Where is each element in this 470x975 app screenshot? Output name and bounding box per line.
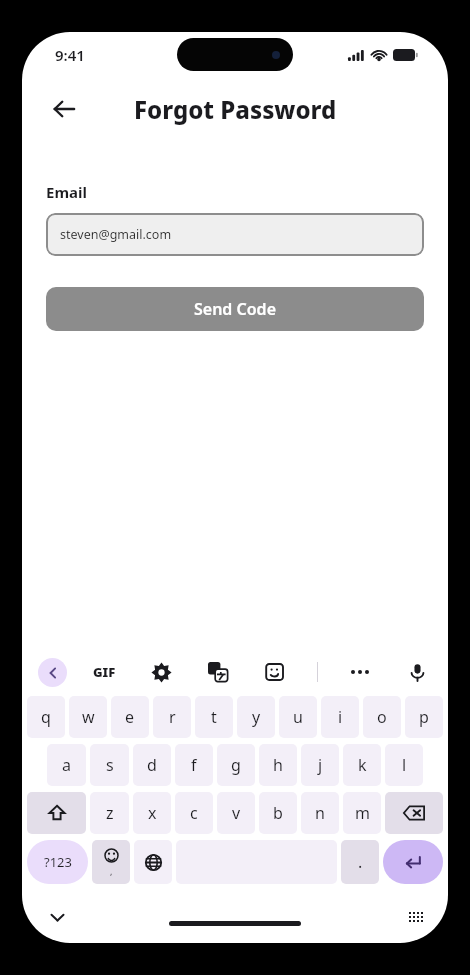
button[interactable]: Enter bbox=[383, 840, 443, 884]
staticText: y bbox=[252, 706, 261, 728]
button[interactable]: u bbox=[279, 696, 317, 738]
staticText: Forgot Password bbox=[134, 93, 337, 126]
button[interactable]: j bbox=[301, 744, 339, 786]
button[interactable]: k bbox=[343, 744, 381, 786]
staticText: ?123 bbox=[44, 853, 72, 871]
button[interactable]: h bbox=[259, 744, 297, 786]
button[interactable]: Stickers bbox=[260, 657, 290, 687]
staticText: r bbox=[169, 706, 176, 728]
staticText: s bbox=[106, 754, 114, 776]
button[interactable]: o bbox=[363, 696, 401, 738]
staticText: g bbox=[231, 754, 241, 776]
button[interactable]: Settings bbox=[146, 657, 176, 687]
staticText: 9:41 bbox=[55, 45, 85, 65]
button[interactable]: Back bbox=[42, 87, 86, 131]
staticText: GIF bbox=[93, 663, 116, 681]
button[interactable]: q bbox=[27, 696, 65, 738]
staticText: c bbox=[190, 802, 198, 824]
button[interactable]: l bbox=[385, 744, 423, 786]
button[interactable]: f bbox=[175, 744, 213, 786]
staticText: , bbox=[110, 865, 113, 877]
button[interactable]: Voice input bbox=[402, 657, 432, 687]
staticText: f bbox=[191, 754, 197, 776]
staticText: k bbox=[358, 754, 367, 776]
button[interactable]: y bbox=[237, 696, 275, 738]
staticText: l bbox=[402, 754, 407, 776]
staticText: i bbox=[338, 706, 343, 728]
staticText: Email bbox=[46, 182, 87, 202]
button[interactable]: c bbox=[175, 792, 213, 834]
button[interactable]: a bbox=[47, 744, 86, 786]
button[interactable]: Emoji bbox=[92, 840, 130, 884]
button[interactable]: d bbox=[133, 744, 171, 786]
button[interactable]: r bbox=[153, 696, 191, 738]
button[interactable]: b bbox=[259, 792, 297, 834]
staticText: x bbox=[148, 802, 157, 824]
staticText: o bbox=[377, 706, 387, 728]
button[interactable]: . bbox=[341, 840, 379, 884]
staticText: Send Code bbox=[194, 298, 277, 320]
button[interactable]: t bbox=[195, 696, 233, 738]
button[interactable]: i bbox=[321, 696, 359, 738]
button[interactable]: x bbox=[133, 792, 171, 834]
button[interactable]: steven@gmail.com bbox=[46, 213, 424, 256]
button[interactable]: Backspace bbox=[385, 792, 443, 834]
button[interactable]: Send Code bbox=[46, 287, 424, 331]
staticText: n bbox=[315, 802, 325, 824]
button[interactable]: e bbox=[111, 696, 149, 738]
staticText: m bbox=[355, 802, 370, 824]
staticText: h bbox=[273, 754, 283, 776]
staticText: d bbox=[147, 754, 157, 776]
button[interactable]: More options bbox=[345, 657, 375, 687]
button[interactable]: w bbox=[69, 696, 107, 738]
button[interactable]: ?123 bbox=[27, 840, 88, 884]
staticText: v bbox=[232, 802, 241, 824]
button[interactable]: Expand toolbar bbox=[38, 658, 67, 687]
staticText: w bbox=[82, 706, 95, 728]
button[interactable]: GIF bbox=[89, 659, 120, 685]
staticText: b bbox=[273, 802, 283, 824]
button[interactable]: Translate bbox=[203, 657, 233, 687]
staticText: j bbox=[318, 754, 323, 776]
button[interactable]: n bbox=[301, 792, 339, 834]
staticText: q bbox=[41, 706, 51, 728]
staticText: . bbox=[358, 851, 363, 873]
button[interactable]: Shift bbox=[27, 792, 86, 834]
button[interactable]: Change language bbox=[134, 840, 172, 884]
button[interactable]: All apps bbox=[402, 903, 430, 931]
button[interactable]: p bbox=[405, 696, 443, 738]
staticText: t bbox=[211, 706, 217, 728]
button[interactable]: v bbox=[217, 792, 255, 834]
button[interactable]: z bbox=[90, 792, 129, 834]
button[interactable]: g bbox=[217, 744, 255, 786]
staticText: a bbox=[62, 754, 71, 776]
staticText: p bbox=[419, 706, 429, 728]
button[interactable]: s bbox=[90, 744, 129, 786]
staticText: steven@gmail.com bbox=[60, 226, 172, 243]
button[interactable]: m bbox=[343, 792, 381, 834]
staticText: z bbox=[106, 802, 114, 824]
staticText: e bbox=[125, 706, 135, 728]
staticText: u bbox=[293, 706, 303, 728]
button[interactable]: Hide keyboard bbox=[42, 902, 72, 932]
